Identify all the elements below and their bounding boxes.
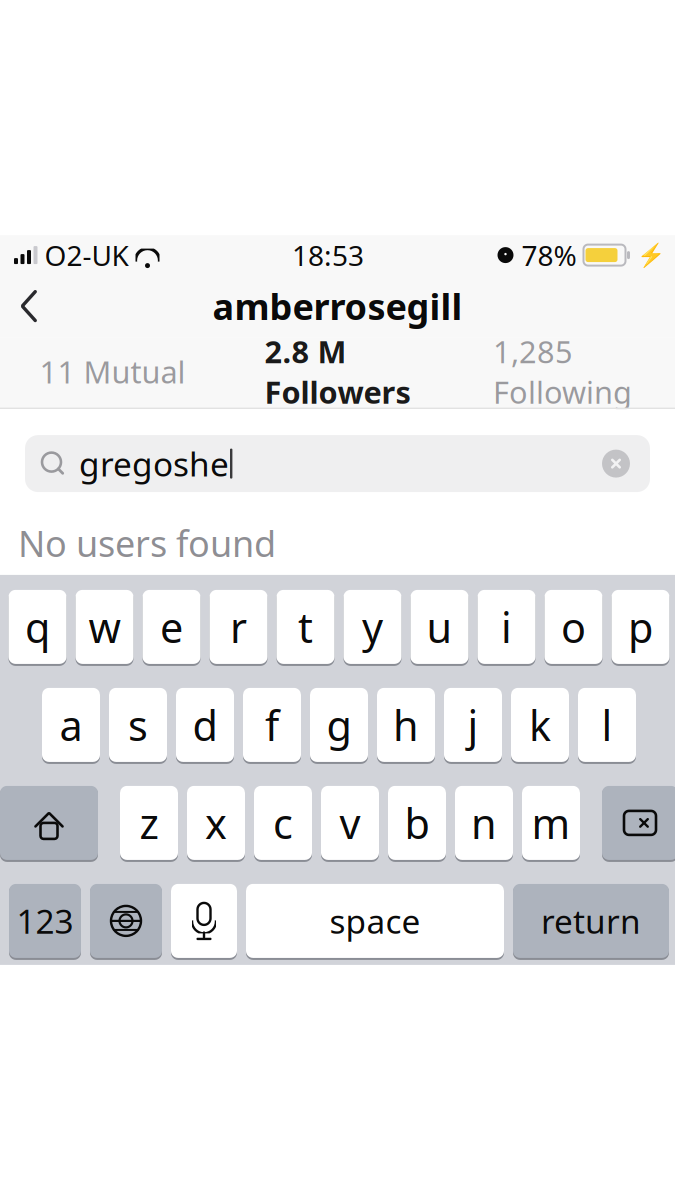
staticText: s xyxy=(128,697,148,752)
button[interactable]: q xyxy=(8,588,66,665)
button[interactable]: Shift xyxy=(0,784,98,861)
button[interactable]: space xyxy=(246,882,504,959)
button[interactable]: m xyxy=(522,784,580,861)
staticText: a xyxy=(59,697,82,752)
staticText: y xyxy=(362,599,383,654)
button[interactable]: 1,285 Following xyxy=(450,337,675,409)
button[interactable]: return xyxy=(513,882,669,959)
staticText: g xyxy=(326,697,351,752)
staticText: b xyxy=(404,795,429,850)
staticText: return xyxy=(541,899,641,943)
button[interactable]: Back xyxy=(0,279,58,333)
staticText: k xyxy=(529,697,551,752)
button[interactable]: x xyxy=(187,784,245,861)
staticText: d xyxy=(192,697,217,752)
staticText: t xyxy=(298,599,313,654)
staticText: gregoshe xyxy=(79,441,229,486)
button[interactable]: e xyxy=(142,588,200,665)
staticText: 11 Mutual xyxy=(39,351,185,392)
button[interactable]: n xyxy=(455,784,513,861)
staticText: x xyxy=(205,795,227,850)
staticText: r xyxy=(230,599,247,654)
staticText: No users found xyxy=(18,519,276,567)
staticText: m xyxy=(531,795,570,850)
button[interactable]: Dictation xyxy=(171,882,237,959)
button[interactable]: s xyxy=(109,686,167,763)
button[interactable]: Clear text xyxy=(602,442,650,486)
staticText: v xyxy=(339,795,360,850)
button[interactable]: k xyxy=(511,686,569,763)
button[interactable]: g xyxy=(310,686,368,763)
staticText: i xyxy=(501,599,512,654)
staticText: c xyxy=(273,795,293,850)
staticText: space xyxy=(329,899,420,943)
button[interactable]: r xyxy=(209,588,267,665)
button[interactable]: j xyxy=(444,686,502,763)
button[interactable]: v xyxy=(321,784,379,861)
button[interactable]: u xyxy=(410,588,468,665)
staticText: n xyxy=(471,795,497,850)
button[interactable]: z xyxy=(120,784,178,861)
button[interactable]: y xyxy=(343,588,401,665)
button[interactable]: d xyxy=(176,686,234,763)
button[interactable]: i xyxy=(477,588,535,665)
staticText: j xyxy=(467,697,478,752)
button[interactable]: Delete xyxy=(602,784,675,861)
staticText: ⚡ xyxy=(637,242,665,268)
staticText: 123 xyxy=(16,899,73,943)
button[interactable]: a xyxy=(42,686,100,763)
staticText: z xyxy=(139,795,158,850)
button[interactable]: o xyxy=(544,588,602,665)
button[interactable]: 2.8 M Followers xyxy=(225,337,450,409)
staticText: l xyxy=(601,697,612,752)
staticText: 18:53 xyxy=(292,236,364,274)
staticText: f xyxy=(265,697,279,752)
button[interactable]: f xyxy=(243,686,301,763)
button[interactable]: l xyxy=(578,686,636,763)
staticText: 2.8 M Followers xyxy=(264,331,410,412)
staticText: h xyxy=(393,697,419,752)
button[interactable]: 11 Mutual xyxy=(0,337,225,409)
button[interactable]: c xyxy=(254,784,312,861)
button[interactable]: 123 xyxy=(9,882,81,959)
button[interactable]: Next keyboard xyxy=(90,882,162,959)
button[interactable]: p xyxy=(611,588,669,665)
staticText: o xyxy=(561,599,586,654)
staticText: 1,285 Following xyxy=(493,331,632,412)
staticText: O2-UK xyxy=(44,236,128,274)
staticText: amberrosegill xyxy=(212,282,462,330)
button[interactable]: h xyxy=(377,686,435,763)
staticText: e xyxy=(160,599,183,654)
button[interactable]: t xyxy=(276,588,334,665)
staticText: p xyxy=(628,599,653,654)
staticText: w xyxy=(88,599,120,654)
staticText: u xyxy=(426,599,452,654)
button[interactable]: b xyxy=(388,784,446,861)
staticText: q xyxy=(25,599,50,654)
staticText: 78% xyxy=(521,236,576,274)
button[interactable]: w xyxy=(75,588,133,665)
